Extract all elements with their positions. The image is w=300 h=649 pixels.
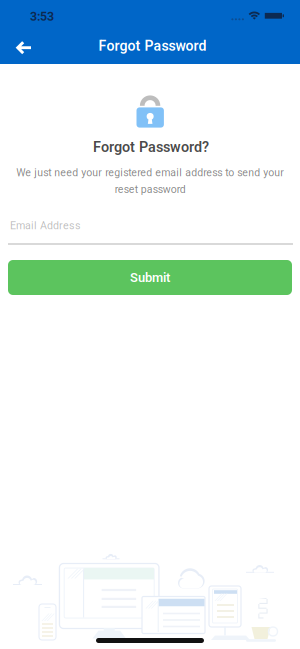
staticText: 3:53 bbox=[30, 9, 54, 24]
staticText: Forgot Password bbox=[98, 38, 206, 54]
staticText: We just need your registered email addre… bbox=[16, 166, 284, 196]
button[interactable]: Submit bbox=[8, 260, 292, 295]
staticText: Email Address bbox=[10, 219, 81, 232]
staticText: Submit bbox=[130, 270, 170, 285]
button[interactable]: Back bbox=[1, 26, 45, 70]
staticText: Forgot Password? bbox=[93, 139, 209, 155]
